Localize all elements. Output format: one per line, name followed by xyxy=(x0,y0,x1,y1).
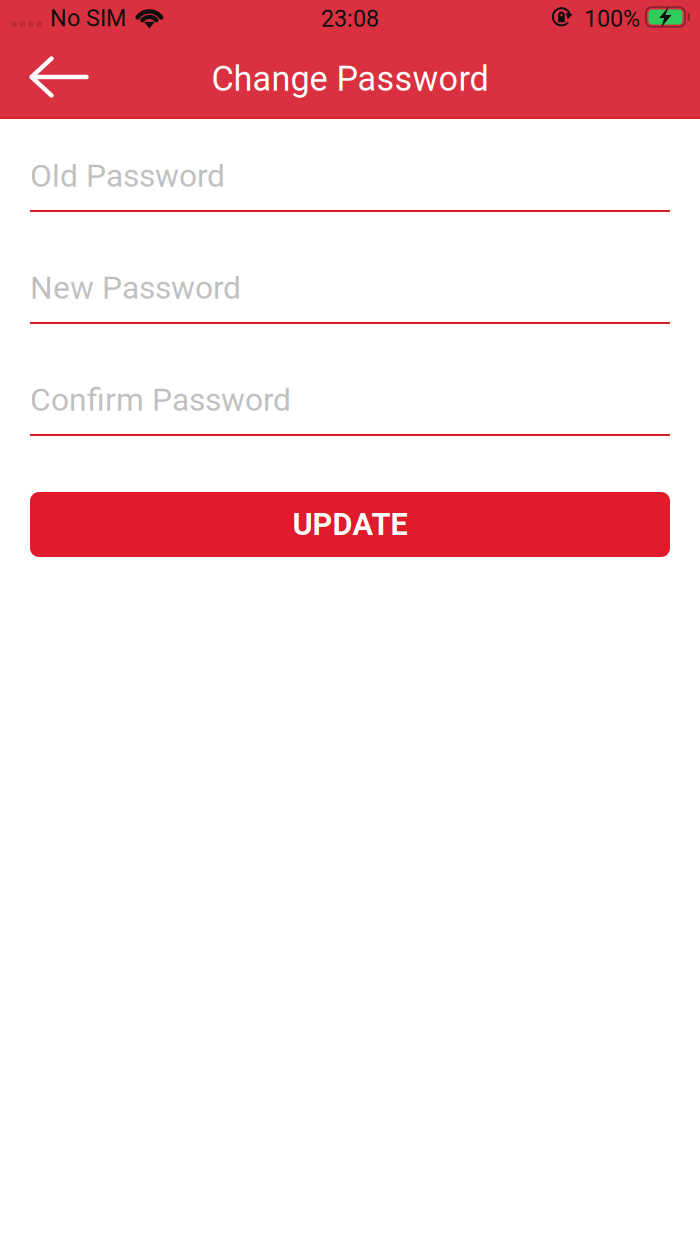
staticText: Change Password xyxy=(211,59,488,99)
button[interactable]: Back xyxy=(13,43,105,118)
staticText: New Password xyxy=(30,269,241,307)
button[interactable]: Confirm Password xyxy=(30,378,670,436)
button[interactable]: New Password xyxy=(30,266,670,324)
button[interactable]: UPDATE xyxy=(30,492,670,557)
staticText: Confirm Password xyxy=(30,381,291,419)
staticText: No SIM xyxy=(50,4,126,32)
staticText: Old Password xyxy=(30,157,225,195)
staticText: UPDATE xyxy=(292,506,407,542)
staticText: 23:08 xyxy=(321,5,379,32)
staticText: 100% xyxy=(584,5,640,32)
button[interactable]: Old Password xyxy=(30,154,670,212)
